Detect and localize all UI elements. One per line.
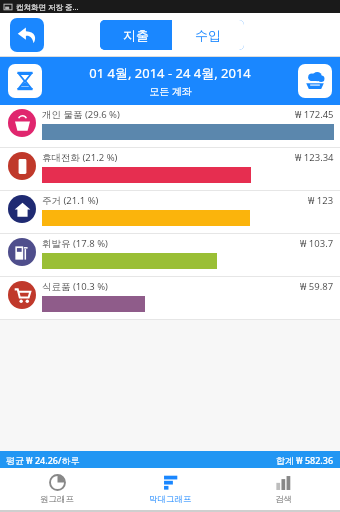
button[interactable]: 휴대전화 (21.2 %) (0, 148, 340, 191)
staticText: 막대그래프 (149, 494, 192, 505)
button[interactable]: 지출 (100, 20, 172, 50)
button[interactable]: Accounts (298, 64, 332, 98)
button[interactable]: 주거 (21.1 %) (0, 191, 340, 234)
staticText: 주거 (21.1 %) (42, 194, 99, 207)
staticText: ₩ 123 (308, 194, 334, 207)
staticText: 수입 (195, 27, 221, 43)
staticText: 원그래프 (40, 494, 74, 505)
button[interactable]: 식료품 (10.3 %) (0, 277, 340, 320)
staticText: ₩ 59.87 (300, 280, 334, 293)
staticText: 개인 물품 (29.6 %) (42, 108, 120, 121)
staticText: 01 4월, 2014 - 24 4월, 2014 (89, 64, 251, 82)
staticText: 평균 ₩ 24.26/하루 (6, 454, 80, 466)
staticText: 지출 (123, 27, 149, 43)
staticText: 모든 계좌 (149, 84, 192, 98)
staticText: 식료품 (10.3 %) (42, 280, 108, 293)
staticText: 휴대전화 (21.2 %) (42, 151, 118, 164)
staticText: ₩ 172.45 (295, 108, 334, 121)
button[interactable]: 수입 (172, 20, 244, 50)
staticText: 합계 ₩ 582.36 (276, 454, 334, 466)
button[interactable]: 원그래프 (0, 468, 114, 510)
staticText: ₩ 123.34 (295, 151, 334, 164)
button[interactable]: 휘발유 (17.8 %) (0, 234, 340, 277)
staticText: 캡쳐화면 저장 중... (16, 2, 79, 12)
staticText: ₩ 103.7 (300, 237, 334, 250)
button[interactable]: 개인 물품 (29.6 %) (0, 105, 340, 148)
button[interactable]: 막대그래프 (114, 468, 227, 510)
staticText: 휘발유 (17.8 %) (42, 237, 108, 250)
button[interactable]: Back (10, 18, 44, 52)
button[interactable]: 검색 (227, 468, 340, 510)
button[interactable]: Period (8, 64, 42, 98)
staticText: 검색 (275, 494, 292, 505)
